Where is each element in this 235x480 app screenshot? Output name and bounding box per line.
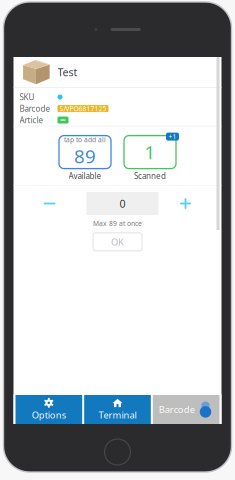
staticText: S/VPO6817125 <box>59 104 106 113</box>
staticText: Article <box>19 115 43 125</box>
button[interactable]: Increase <box>163 192 207 215</box>
staticText: Options <box>32 409 66 421</box>
staticText: tap to add all <box>64 135 106 144</box>
staticText: Barcode <box>159 403 195 416</box>
staticText: Available <box>68 171 101 181</box>
staticText: 0 <box>119 196 125 211</box>
staticText: SKU <box>19 92 34 102</box>
staticText: 89 <box>74 144 96 168</box>
button[interactable]: 1 <box>124 136 176 181</box>
staticText: +1 <box>168 132 176 141</box>
button[interactable]: OK <box>93 233 142 251</box>
staticText: Scanned <box>134 171 166 181</box>
button[interactable]: Barcode <box>153 395 219 424</box>
staticText: 1 <box>144 140 155 164</box>
button[interactable]: Decrease <box>27 192 71 215</box>
button[interactable]: Terminal <box>84 395 151 424</box>
staticText: Test <box>57 65 77 79</box>
button[interactable]: tap to add all <box>59 136 111 181</box>
staticText: OK <box>111 236 124 248</box>
staticText: Barcode <box>19 103 50 114</box>
button[interactable]: Options <box>15 395 82 424</box>
staticText: Max 89 at once <box>93 219 142 228</box>
staticText: Terminal <box>98 409 136 421</box>
